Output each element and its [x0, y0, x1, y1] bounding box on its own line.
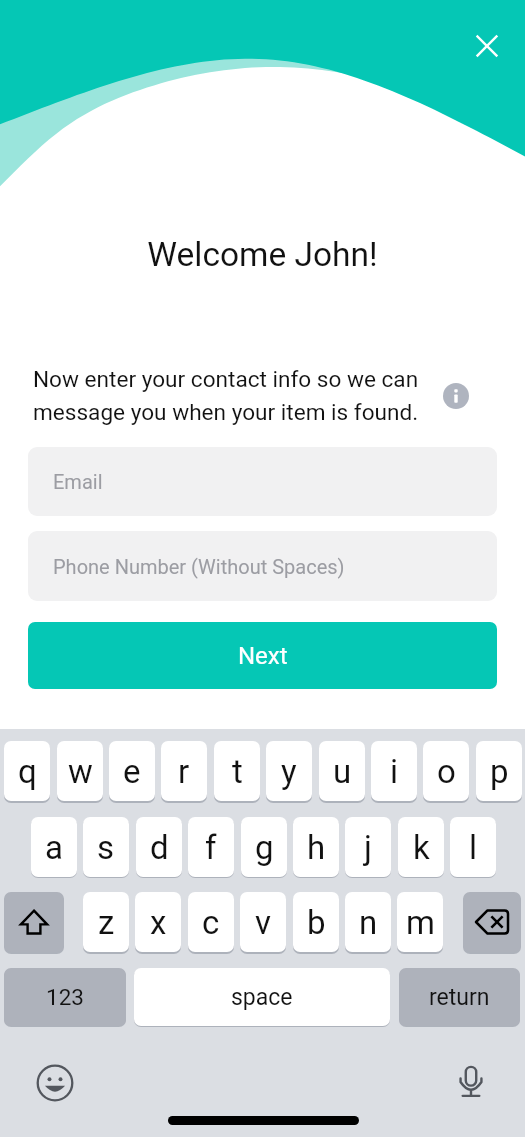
staticText: Welcome John! [0, 235, 525, 274]
button[interactable]: 123 [4, 968, 126, 1026]
button[interactable]: h [293, 817, 339, 877]
staticText: i [390, 752, 399, 791]
staticText: u [333, 752, 352, 791]
staticText: f [205, 828, 217, 867]
staticText: x [150, 903, 167, 942]
button[interactable]: g [241, 817, 287, 877]
staticText: e [123, 752, 141, 791]
staticText: Now enter your contact info so we can me… [33, 366, 433, 426]
button[interactable]: l [450, 817, 496, 877]
staticText: b [307, 903, 326, 942]
button[interactable]: b [293, 892, 339, 952]
button[interactable]: return [399, 968, 520, 1026]
button[interactable]: o [423, 741, 469, 801]
staticText: r [178, 752, 190, 791]
staticText: d [150, 828, 169, 867]
button[interactable]: s [83, 817, 129, 877]
button[interactable]: v [240, 892, 286, 952]
staticText: space [231, 984, 293, 1011]
button[interactable]: Next [28, 622, 497, 689]
staticText: j [364, 828, 372, 867]
staticText: q [18, 752, 37, 791]
button[interactable]: e [109, 741, 155, 801]
button[interactable]: Backspace [463, 892, 521, 952]
staticText: o [437, 752, 456, 791]
staticText: Email [53, 470, 103, 493]
button[interactable]: f [188, 817, 234, 877]
staticText: a [45, 828, 63, 867]
staticText: Next [238, 642, 288, 670]
staticText: g [255, 828, 274, 867]
staticText: y [281, 752, 297, 791]
button[interactable]: d [136, 817, 182, 877]
staticText: 123 [46, 984, 84, 1010]
button[interactable]: m [397, 892, 443, 952]
button[interactable]: x [135, 892, 181, 952]
staticText: m [406, 903, 435, 942]
button[interactable]: Phone Number (Without Spaces) [28, 531, 497, 601]
button[interactable]: Emoji [32, 1060, 78, 1106]
button[interactable]: k [398, 817, 444, 877]
button[interactable]: j [345, 817, 391, 877]
staticText: w [68, 752, 93, 791]
button[interactable]: y [266, 741, 312, 801]
staticText: t [232, 752, 243, 791]
button[interactable]: Voice input [448, 1059, 494, 1105]
button[interactable]: space [134, 968, 390, 1026]
staticText: n [359, 903, 378, 942]
staticText: s [97, 828, 115, 867]
staticText: h [307, 828, 326, 867]
staticText: l [469, 828, 478, 867]
staticText: return [429, 984, 490, 1011]
button[interactable]: t [214, 741, 260, 801]
button[interactable]: n [345, 892, 391, 952]
button[interactable]: Shift [4, 892, 64, 952]
button[interactable]: a [31, 817, 77, 877]
button[interactable]: r [161, 741, 207, 801]
button[interactable]: z [83, 892, 129, 952]
button[interactable]: Email [28, 447, 497, 516]
button[interactable]: c [188, 892, 234, 952]
button[interactable]: p [476, 741, 522, 801]
button[interactable]: Info [443, 383, 469, 409]
staticText: p [490, 752, 509, 791]
staticText: v [255, 903, 271, 942]
button[interactable]: Close [465, 24, 509, 68]
staticText: z [98, 903, 115, 942]
button[interactable]: q [4, 741, 50, 801]
staticText: k [413, 828, 430, 867]
staticText: c [202, 903, 220, 942]
staticText: Phone Number (Without Spaces) [53, 555, 345, 578]
button[interactable]: w [57, 741, 103, 801]
button[interactable]: i [371, 741, 417, 801]
button[interactable]: u [319, 741, 365, 801]
